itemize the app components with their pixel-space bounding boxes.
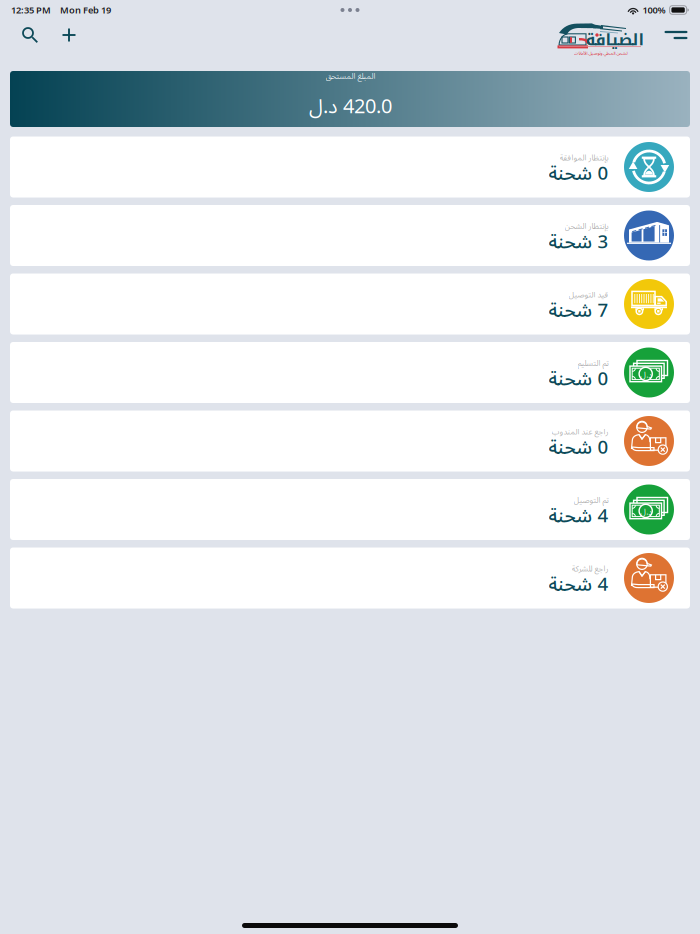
- staticText: Mon Feb 19: [60, 4, 111, 16]
- button[interactable]: تم التسليم: [10, 342, 690, 403]
- staticText: تم التسليم: [577, 355, 608, 372]
- staticText: د.ل: [640, 504, 652, 521]
- button[interactable]: Add: [50, 20, 88, 42]
- staticText: المبلغ المستحق: [325, 68, 375, 85]
- staticText: 4 شحنة: [548, 565, 608, 604]
- staticText: راجع للشركة: [571, 561, 608, 577]
- staticText: لشحن المحلي وتوصيل الأمانات: [573, 48, 627, 58]
- staticText: 0 شحنة: [548, 360, 608, 399]
- staticText: د.ل: [640, 367, 652, 384]
- staticText: 100%: [643, 4, 666, 16]
- staticText: 12:35 PM: [11, 4, 51, 16]
- staticText: الضيافة: [585, 25, 644, 55]
- button[interactable]: تم التوصيل: [10, 479, 690, 540]
- staticText: 0 شحنة: [548, 154, 608, 193]
- staticText: تم التوصيل: [573, 492, 608, 509]
- staticText: 420.0 د.ل: [308, 86, 391, 128]
- staticText: 0 شحنة: [548, 428, 608, 467]
- staticText: بإنتظار الموافقة: [559, 150, 608, 166]
- staticText: 3 شحنة: [548, 223, 608, 262]
- button[interactable]: Menu: [656, 20, 696, 40]
- staticText: بإنتظار الشحن: [564, 218, 608, 235]
- button[interactable]: بإنتظار الموافقة: [10, 136, 690, 197]
- button[interactable]: راجع عند المندوب: [10, 410, 690, 471]
- staticText: 7 شحنة: [548, 291, 608, 330]
- staticText: قيد التوصيل: [568, 287, 608, 303]
- button[interactable]: راجع للشركة: [10, 547, 690, 608]
- button[interactable]: بإنتظار الشحن: [10, 205, 690, 266]
- staticText: 4 شحنة: [548, 497, 608, 536]
- staticText: راجع عند المندوب: [551, 424, 608, 440]
- button[interactable]: Search: [10, 20, 50, 43]
- button[interactable]: قيد التوصيل: [10, 273, 690, 334]
